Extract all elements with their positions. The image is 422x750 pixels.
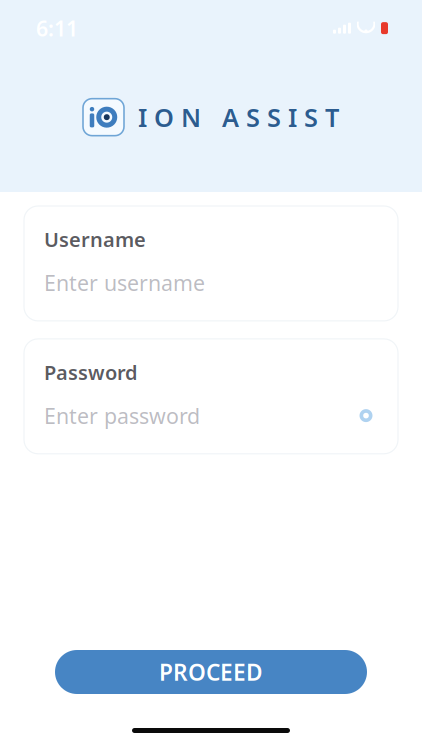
button[interactable]: Password [24,339,398,454]
button[interactable]: Username [24,206,398,321]
staticText: I O N A S S I S T [138,100,339,134]
button[interactable]: PROCEED [55,650,367,694]
staticText: Enter password [44,401,200,430]
staticText: Username [44,226,146,253]
staticText: Enter username [44,269,205,297]
staticText: PROCEED [159,657,263,687]
staticText: 6:11 [36,14,78,42]
staticText: Password [44,359,138,385]
